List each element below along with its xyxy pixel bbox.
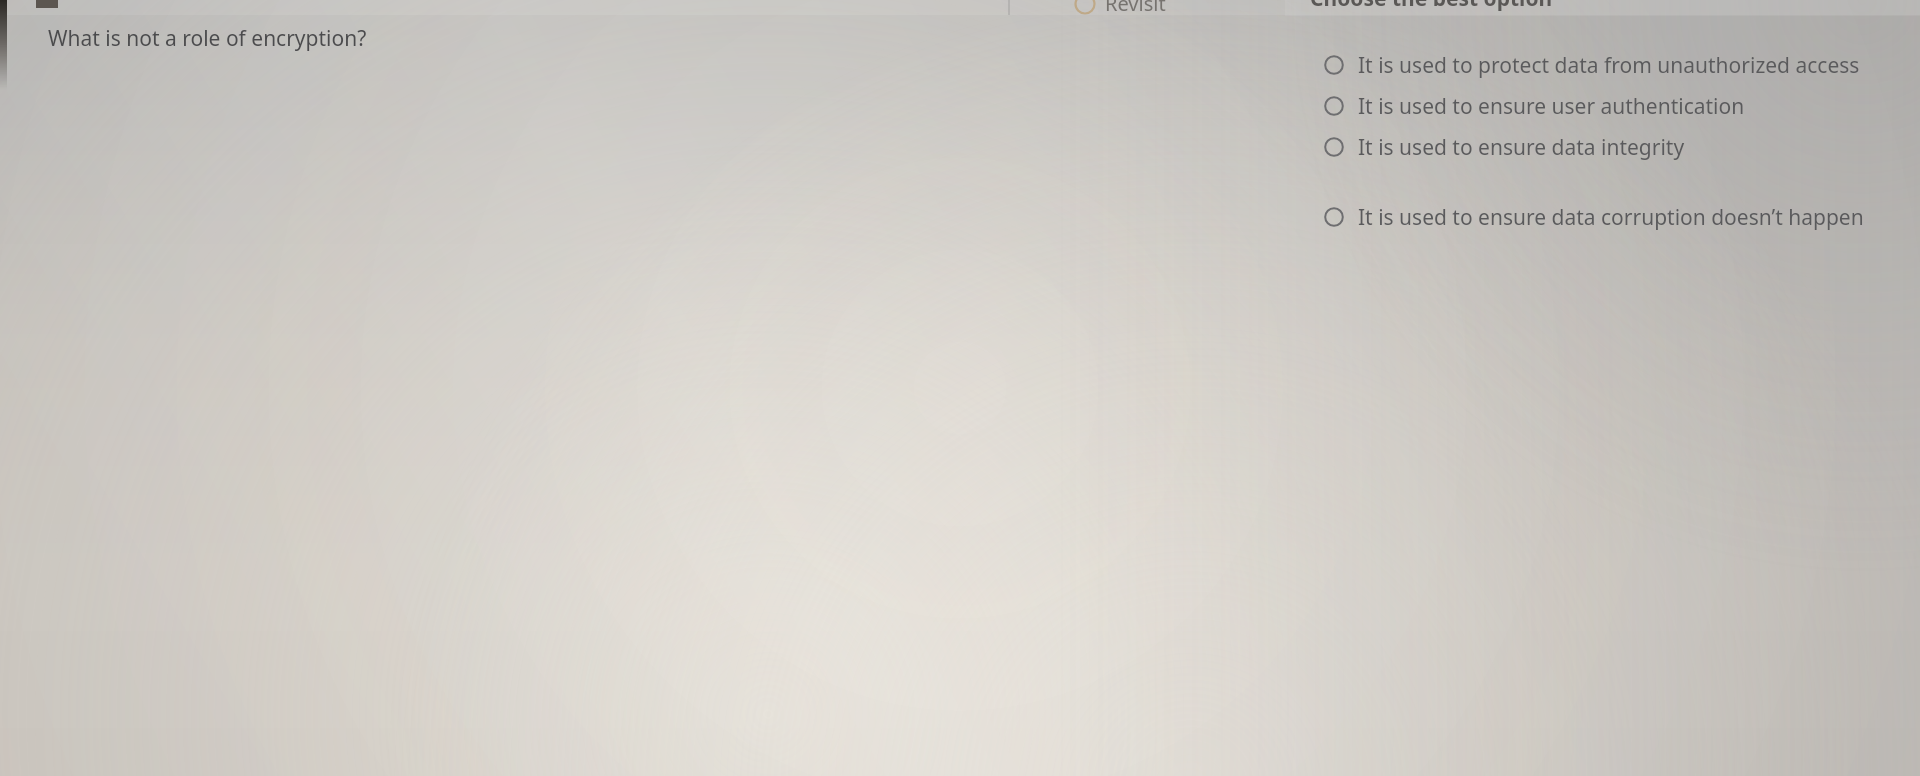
button[interactable]: Revisit [1066, 0, 1174, 23]
staticText: What is not a role of encryption? [48, 24, 367, 53]
button[interactable]: It is used to ensure data integrity [1316, 127, 1693, 167]
staticText: It is used to protect data from unauthor… [1358, 51, 1860, 80]
button[interactable]: It is used to ensure data corruption doe… [1316, 197, 1872, 237]
staticText: Revisit [1105, 0, 1166, 17]
button[interactable]: What is not a role of encryption? [40, 20, 375, 57]
staticText: It is used to ensure user authentication [1358, 92, 1745, 121]
button[interactable]: It is used to protect data from unauthor… [1316, 45, 1868, 85]
button[interactable]: It is used to ensure user authentication [1316, 86, 1753, 126]
staticText: Choose the best option [1310, 0, 1553, 13]
staticText: It is used to ensure data integrity [1358, 133, 1685, 162]
staticText: It is used to ensure data corruption doe… [1358, 203, 1864, 232]
